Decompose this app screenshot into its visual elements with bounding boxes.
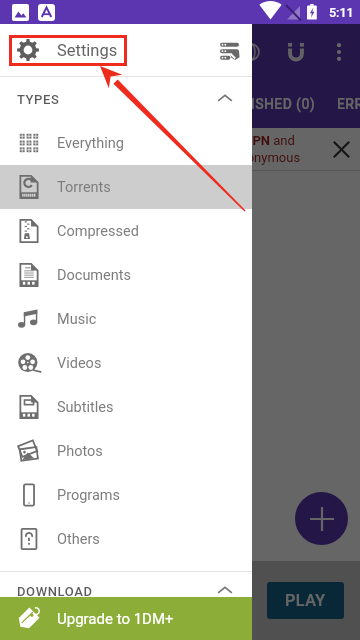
staticText: Upgrade to 1DM+ bbox=[57, 610, 174, 628]
staticText: Subtitles bbox=[57, 399, 114, 416]
button[interactable]: Compressed bbox=[0, 209, 252, 253]
button[interactable]: PLAY bbox=[267, 582, 344, 619]
button[interactable]: Documents bbox=[0, 253, 252, 297]
button[interactable]: Subtitles bbox=[0, 385, 252, 429]
button[interactable]: TYPES bbox=[0, 77, 252, 121]
staticText: Compressed bbox=[57, 223, 139, 240]
staticText: be anonymous bbox=[215, 150, 301, 165]
staticText: PLAY bbox=[285, 591, 326, 610]
staticText: Others bbox=[57, 531, 100, 548]
button[interactable]: DOWNLOAD bbox=[0, 572, 252, 610]
staticText: Videos bbox=[57, 355, 102, 372]
button[interactable]: Ad choices bbox=[213, 34, 245, 66]
staticText: Everything bbox=[57, 135, 124, 152]
staticText: Music bbox=[57, 311, 97, 328]
staticText: IronVPN and bbox=[221, 133, 295, 148]
button[interactable]: Browser bbox=[227, 28, 275, 76]
staticText: ERRORS bbox=[337, 96, 360, 112]
button[interactable]: Everything bbox=[0, 121, 252, 165]
button[interactable]: Programs bbox=[0, 473, 252, 517]
button[interactable]: More options bbox=[318, 31, 360, 73]
button[interactable]: Settings bbox=[0, 24, 252, 76]
button[interactable]: Photos bbox=[0, 429, 252, 473]
staticText: Programs bbox=[57, 487, 121, 504]
button[interactable]: Close advertisement bbox=[321, 129, 360, 169]
button[interactable]: Others bbox=[0, 517, 252, 561]
staticText: FINISHED (0) bbox=[228, 96, 316, 112]
staticText: Photos bbox=[57, 443, 103, 460]
button[interactable]: Music bbox=[0, 297, 252, 341]
staticText: DOWNLOAD bbox=[17, 584, 93, 599]
staticText: Documents bbox=[57, 267, 132, 284]
staticText: Torrents bbox=[57, 179, 111, 196]
button[interactable]: Add download bbox=[295, 492, 348, 545]
button[interactable]: Upgrade to 1DM+ bbox=[0, 597, 252, 640]
staticText: Settings bbox=[57, 41, 118, 60]
button[interactable]: Videos bbox=[0, 341, 252, 385]
button[interactable]: Magnet link bbox=[272, 28, 320, 76]
staticText: 5:11 bbox=[329, 5, 354, 20]
staticText: DOWNLOADING (0) bbox=[70, 96, 197, 112]
staticText: TYPES bbox=[17, 92, 60, 107]
button[interactable]: Torrents bbox=[0, 165, 252, 209]
